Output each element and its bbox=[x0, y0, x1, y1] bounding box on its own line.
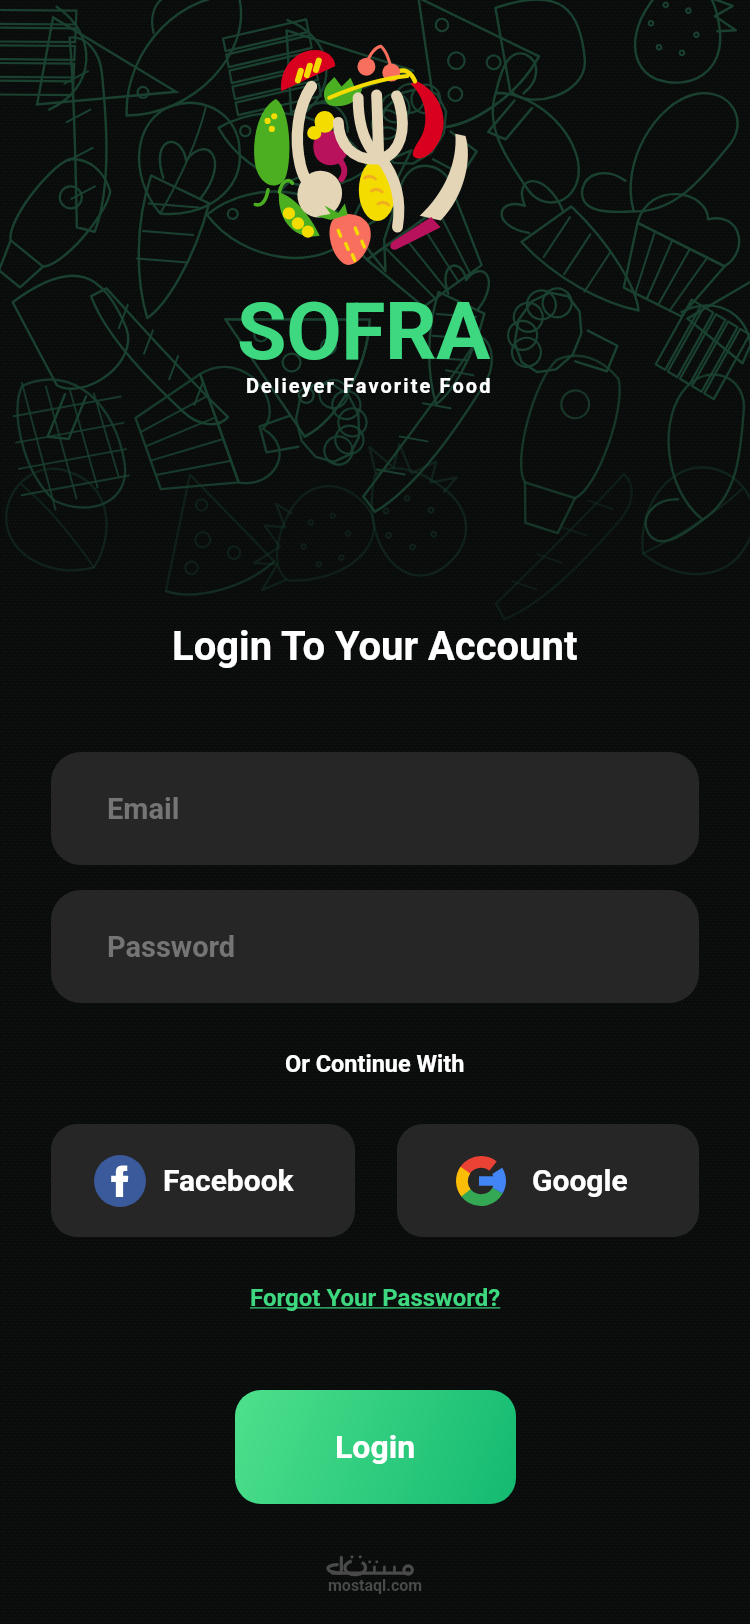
button[interactable]: Login bbox=[235, 1390, 516, 1504]
button[interactable]: Google bbox=[397, 1124, 699, 1237]
staticText: mostaql.com bbox=[328, 1576, 423, 1595]
button[interactable]: Password bbox=[51, 890, 699, 1003]
staticText: Email bbox=[107, 792, 180, 826]
staticText: Login bbox=[335, 1428, 416, 1466]
staticText: Forgot Your Password? bbox=[250, 1284, 501, 1312]
staticText: Password bbox=[107, 930, 236, 964]
staticText: Google bbox=[532, 1163, 628, 1198]
button[interactable]: Email bbox=[51, 752, 699, 865]
staticText: Login To Your Account bbox=[172, 623, 578, 670]
staticText: Facebook bbox=[163, 1163, 294, 1198]
button[interactable]: Facebook bbox=[51, 1124, 355, 1237]
button[interactable]: Forgot Your Password? bbox=[250, 1284, 501, 1312]
staticText: SOFRA bbox=[237, 284, 490, 378]
staticText: Delieyer Favorite Food bbox=[246, 374, 493, 397]
staticText: Or Continue With bbox=[285, 1050, 465, 1078]
